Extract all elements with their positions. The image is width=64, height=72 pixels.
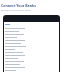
staticText: Securely link accounts to import <box>1 9 31 12</box>
staticText: Connect Your Banks <box>1 3 36 8</box>
